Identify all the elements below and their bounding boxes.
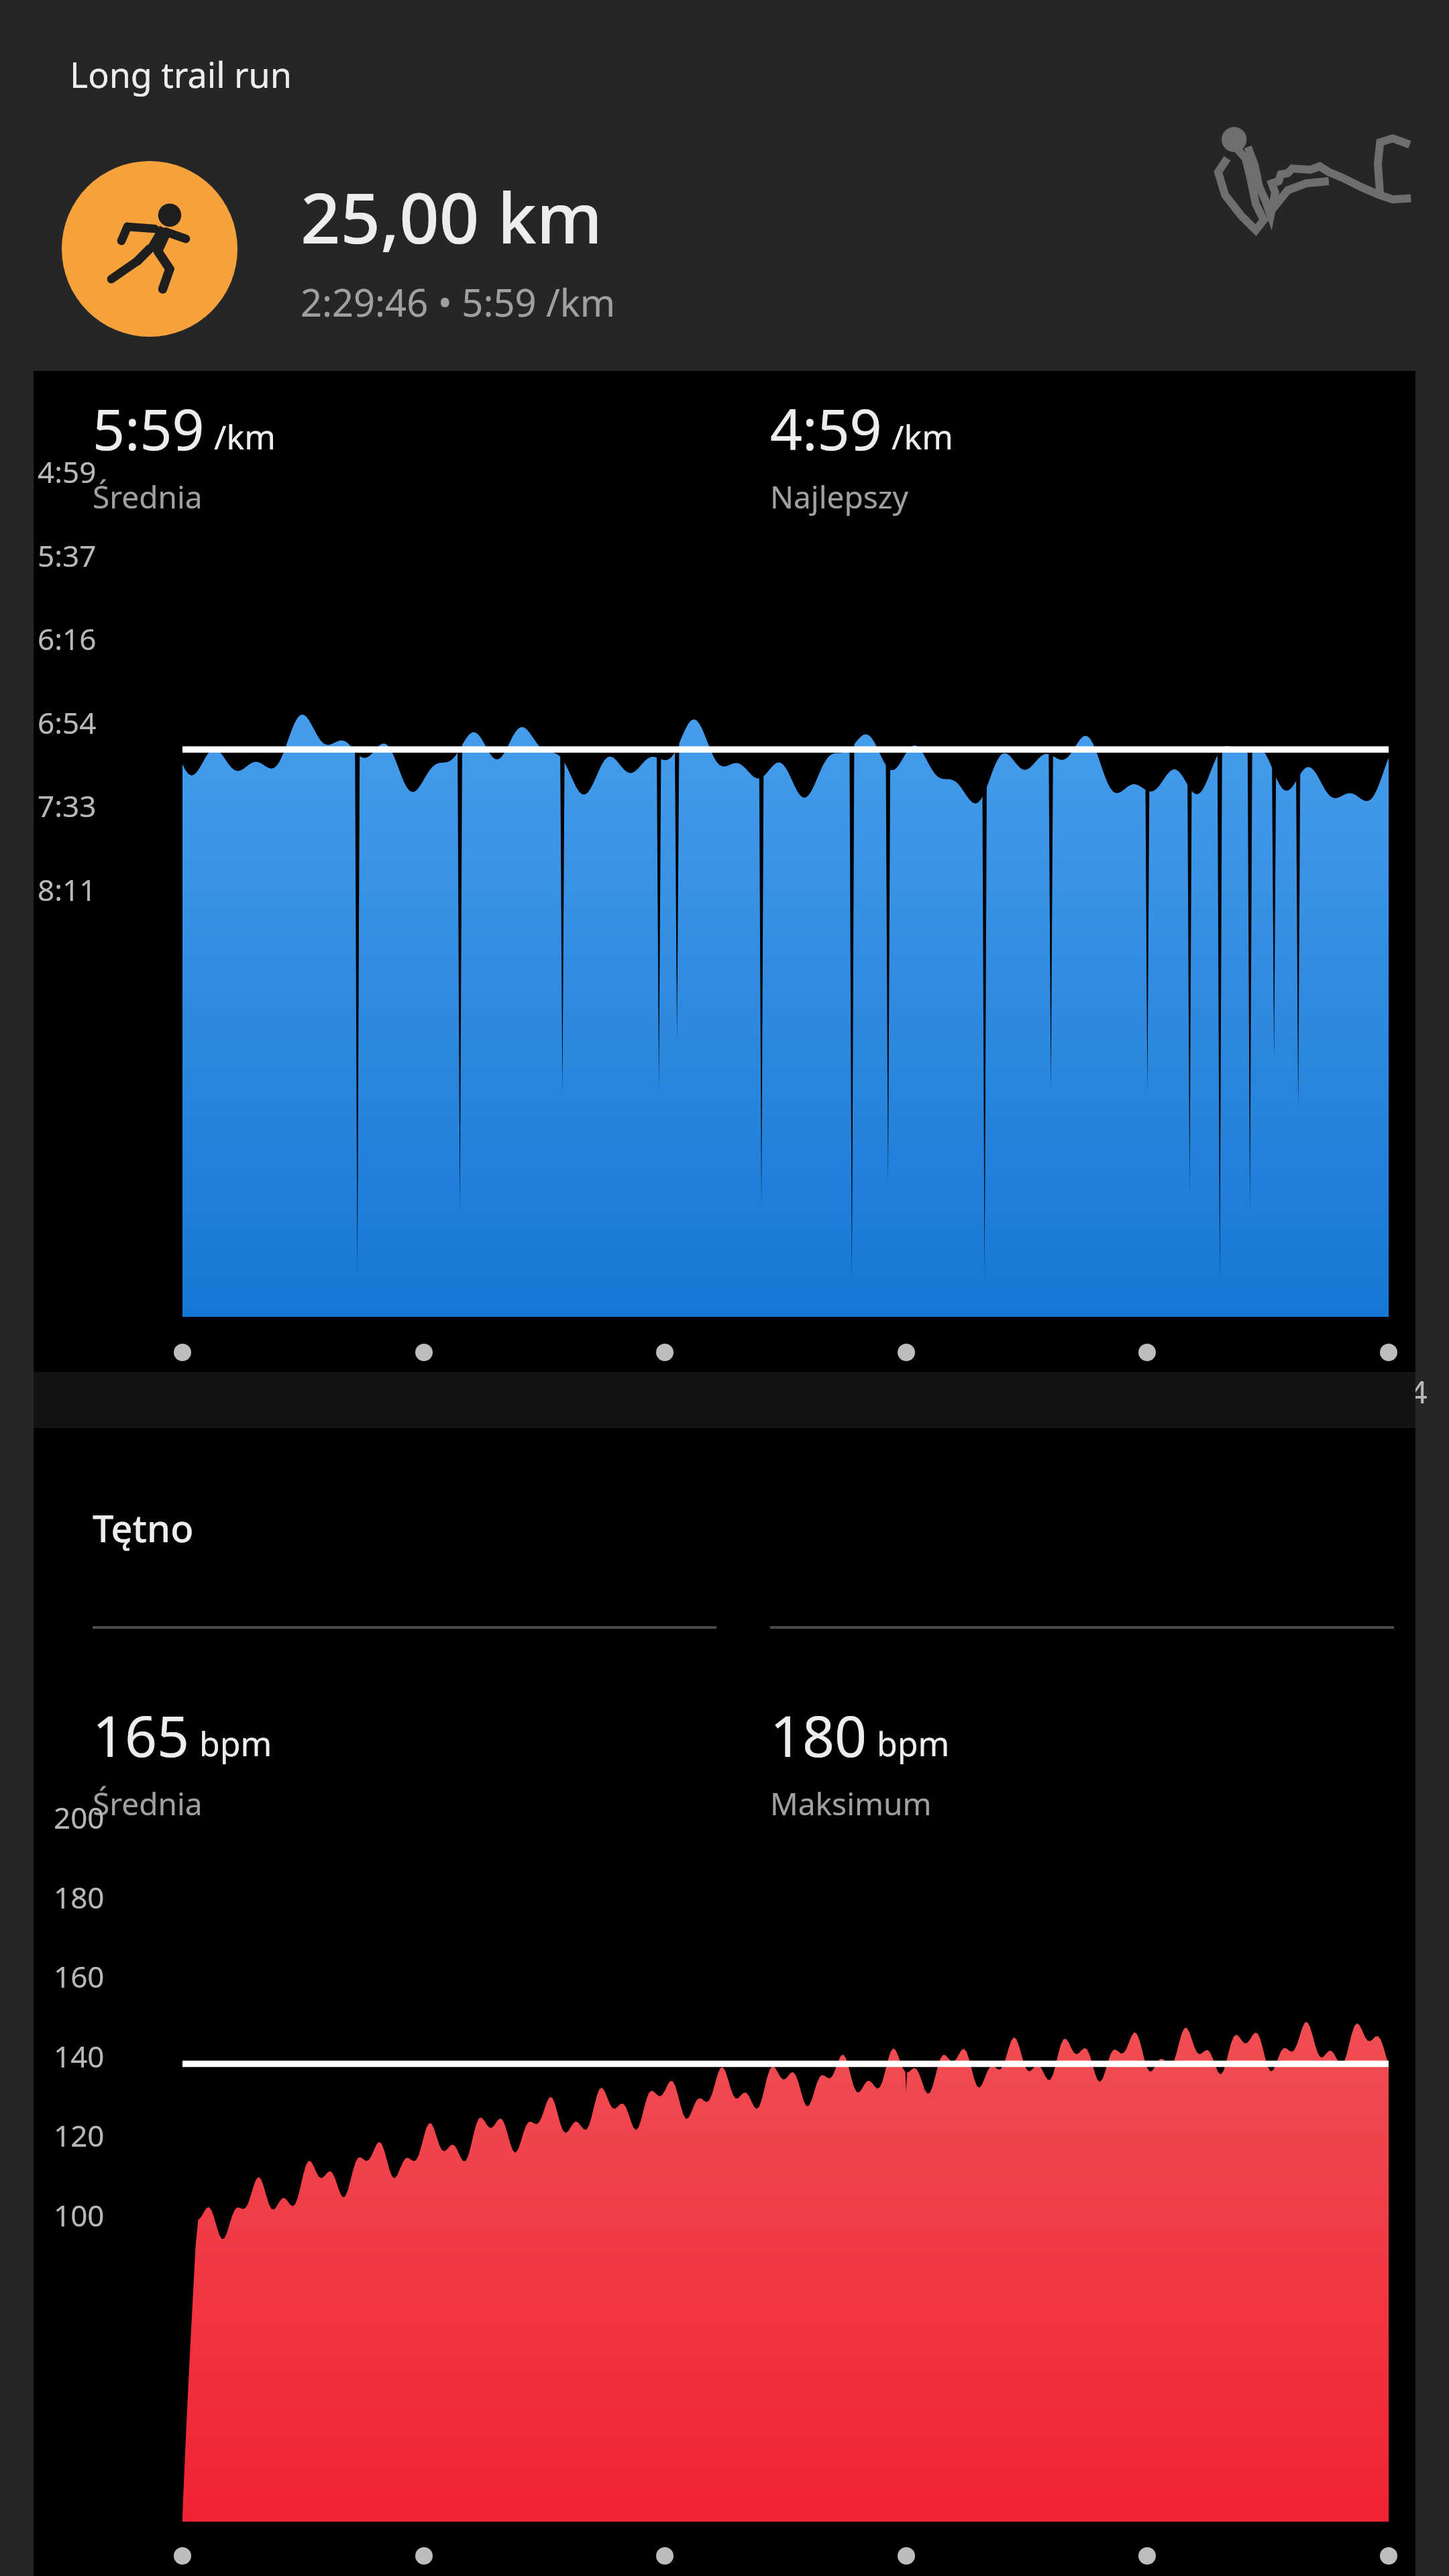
staticText: bpm	[877, 1721, 950, 1766]
staticText: 100	[54, 2195, 105, 2235]
staticText: 2:29:4	[1340, 1371, 1428, 1413]
button[interactable]: 180	[770, 1697, 950, 1825]
staticText: 8:11	[38, 869, 97, 910]
staticText: 140	[54, 2036, 105, 2076]
staticText: Średnia	[93, 476, 203, 518]
staticText: bpm	[199, 1721, 272, 1766]
staticText: 4:59	[770, 390, 882, 466]
other: Running activity	[62, 161, 237, 337]
staticText: 200	[54, 1797, 105, 1837]
staticText: Tętno	[93, 1502, 194, 1553]
staticText: 59:54	[625, 1371, 704, 1413]
staticText: 7:33	[38, 786, 97, 826]
button[interactable]: 165	[93, 1697, 272, 1825]
staticText: 29:57	[384, 1371, 463, 1413]
staticText: 1:59:49	[1091, 1371, 1196, 1413]
staticText: 120	[54, 2115, 105, 2155]
staticText: 0:00	[150, 1371, 212, 1413]
staticText: Średnia	[93, 1782, 203, 1825]
staticText: 165	[93, 1697, 190, 1773]
staticText: 1:29:52	[850, 1371, 955, 1413]
staticText: /km	[892, 414, 954, 460]
staticText: 180	[770, 1697, 867, 1773]
staticText: 160	[54, 1956, 105, 1996]
staticText: 5:59	[93, 390, 205, 466]
staticText: /km	[214, 414, 276, 460]
staticText: 25,00 km	[301, 169, 603, 264]
staticText: 6:16	[38, 619, 97, 659]
staticText: 5:37	[38, 535, 97, 576]
button[interactable]: 4:59	[770, 390, 954, 518]
staticText: 2:29:46 • 5:59 /km	[301, 276, 616, 327]
staticText: Najlepszy	[770, 476, 908, 518]
staticText: Long trail run	[70, 50, 292, 98]
button[interactable]: Long trail run	[0, 0, 1449, 371]
staticText: Maksimum	[770, 1782, 932, 1825]
button[interactable]: 5:59	[93, 390, 276, 518]
staticText: 6:54	[38, 702, 97, 743]
staticText: 4:59	[38, 451, 97, 492]
staticText: 2:29:4	[1340, 2574, 1428, 2576]
staticText: 180	[54, 1877, 105, 1917]
